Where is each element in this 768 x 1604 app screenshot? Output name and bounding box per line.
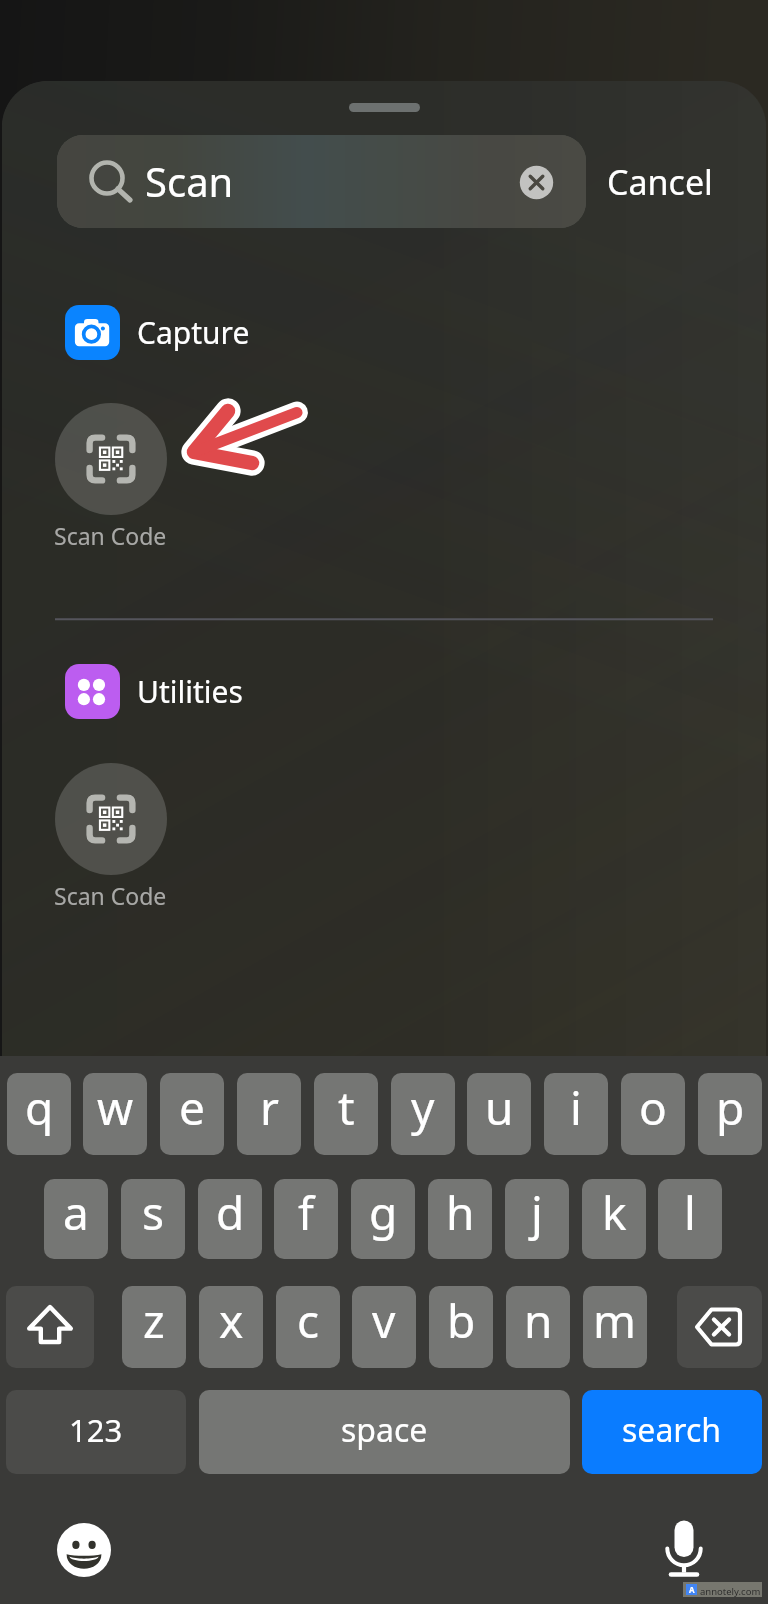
staticText: g [369,1181,398,1244]
staticText: a [63,1181,89,1244]
button[interactable]: y [391,1073,455,1155]
staticText: m [593,1289,637,1352]
button[interactable]: Utilities [65,663,243,719]
button[interactable]: Backspace [677,1286,762,1368]
staticText: r [260,1076,279,1139]
staticText: k [602,1181,627,1244]
button[interactable]: q [7,1073,71,1155]
button[interactable]: l [658,1179,722,1259]
button[interactable]: r [237,1073,301,1155]
button[interactable]: k [582,1179,646,1259]
button[interactable]: a [44,1179,108,1259]
staticText: o [639,1076,667,1139]
staticText: c [297,1289,320,1352]
button[interactable]: g [351,1179,415,1259]
staticText: l [684,1181,696,1244]
staticText: d [216,1181,245,1244]
staticText: space [341,1408,428,1452]
staticText: i [570,1076,582,1139]
staticText: e [179,1076,205,1139]
staticText: p [716,1076,745,1139]
button[interactable]: v [352,1286,416,1368]
button[interactable]: e [160,1073,224,1155]
button[interactable]: space [199,1390,570,1474]
button[interactable]: i [544,1073,608,1155]
button[interactable]: 123 [6,1390,186,1474]
staticText: search [622,1408,722,1452]
button[interactable]: c [276,1286,340,1368]
button[interactable]: Emoji [57,1523,111,1577]
button[interactable]: m [583,1286,647,1368]
button[interactable]: p [698,1073,762,1155]
button[interactable]: x [199,1286,263,1368]
staticText: y [411,1076,435,1139]
button[interactable]: Cancel [598,152,724,212]
staticText: Capture [137,312,250,353]
button[interactable]: b [429,1286,493,1368]
staticText: A [689,1584,695,1595]
button[interactable]: o [621,1073,685,1155]
button[interactable]: f [274,1179,338,1259]
staticText: q [25,1076,54,1139]
staticText: n [524,1289,553,1352]
button[interactable]: d [198,1179,262,1259]
staticText: v [372,1289,396,1352]
staticText: z [143,1289,165,1352]
button[interactable]: h [428,1179,492,1259]
staticText: Utilities [137,671,243,712]
staticText: u [485,1076,514,1139]
button[interactable]: Scan Code [55,763,195,911]
button[interactable]: Shift [6,1286,94,1368]
staticText: Scan [145,154,234,208]
staticText: Scan Code [54,880,167,911]
staticText: Scan Code [54,520,167,551]
button[interactable]: Scan [57,135,586,228]
staticText: s [142,1181,165,1244]
staticText: j [531,1181,543,1244]
button[interactable]: u [467,1073,531,1155]
button[interactable]: n [506,1286,570,1368]
staticText: w [97,1076,134,1139]
button[interactable]: t [314,1073,378,1155]
button[interactable]: w [83,1073,147,1155]
button[interactable]: Scan Code [55,403,195,551]
button[interactable]: Clear text [516,162,557,203]
staticText: 123 [69,1409,123,1451]
button[interactable]: s [121,1179,185,1259]
staticText: annotely.com [700,1585,761,1598]
button[interactable]: Dictation [662,1518,706,1578]
staticText: Cancel [607,159,713,205]
staticText: h [446,1181,475,1244]
staticText: b [447,1289,476,1352]
button[interactable]: j [505,1179,569,1259]
staticText: x [219,1289,244,1352]
button[interactable]: Capture [65,304,250,360]
staticText: t [338,1076,355,1139]
staticText: f [298,1181,314,1244]
button[interactable]: z [122,1286,186,1368]
button[interactable]: search [582,1390,762,1474]
